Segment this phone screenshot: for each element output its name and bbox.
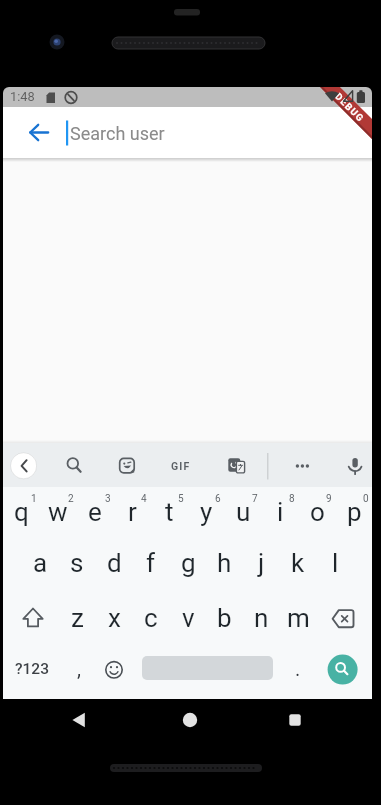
staticText: r (128, 497, 137, 527)
button[interactable]: r (114, 487, 150, 537)
staticText: DEBUG (333, 91, 367, 125)
button[interactable] (321, 646, 365, 694)
button[interactable]: s (59, 538, 95, 588)
button[interactable]: n (243, 593, 279, 643)
button[interactable]: GIF (159, 446, 203, 486)
button[interactable]: Search user (70, 120, 220, 146)
button[interactable]: y (188, 487, 224, 537)
staticText: f (146, 548, 156, 578)
button[interactable]: k (280, 538, 316, 588)
staticText: o (310, 497, 325, 527)
staticText: 8 (289, 493, 295, 505)
button[interactable]: i (262, 487, 298, 537)
button[interactable]: . (283, 644, 313, 692)
button[interactable] (7, 446, 41, 486)
staticText: b (217, 603, 232, 633)
button[interactable]: d (96, 538, 132, 588)
staticText: w (48, 497, 68, 527)
staticText: z (71, 603, 84, 633)
button[interactable]: z (59, 593, 95, 643)
staticText: t (165, 497, 174, 527)
button[interactable]: j (243, 538, 279, 588)
button[interactable]: m (280, 593, 316, 643)
staticText: a (33, 548, 48, 578)
staticText: x (108, 603, 121, 633)
button[interactable]: x (96, 593, 132, 643)
staticText: v (182, 603, 195, 633)
staticText: l (332, 548, 339, 578)
staticText: c (144, 603, 158, 633)
button[interactable]: c (133, 593, 169, 643)
staticText: j (258, 548, 265, 578)
button[interactable] (53, 446, 93, 486)
staticText: e (88, 497, 102, 527)
button[interactable]: l (317, 538, 353, 588)
button[interactable]: q (3, 487, 39, 537)
staticText: ?123 (15, 660, 49, 678)
staticText: d (107, 548, 122, 578)
button[interactable]: h (206, 538, 242, 588)
button[interactable]: w (40, 487, 76, 537)
button[interactable]: p (336, 487, 372, 537)
staticText: 7 (252, 493, 258, 505)
button[interactable]: e (77, 487, 113, 537)
button[interactable]: u (225, 487, 261, 537)
staticText: 2 (68, 493, 74, 505)
staticText: p (347, 497, 362, 527)
button[interactable] (260, 698, 330, 742)
button[interactable] (142, 644, 273, 692)
staticText: i (277, 497, 284, 527)
button[interactable] (155, 698, 225, 742)
staticText: 4 (141, 493, 147, 505)
staticText: h (217, 548, 232, 578)
staticText: Search user (70, 123, 165, 144)
staticText: GIF (171, 460, 191, 472)
staticText: k (291, 548, 305, 578)
button[interactable] (7, 593, 59, 643)
staticText: 5 (178, 493, 184, 505)
button[interactable] (96, 646, 132, 694)
button[interactable] (335, 446, 375, 486)
staticText: 1 (31, 493, 37, 505)
button[interactable] (43, 698, 113, 742)
staticText: 9 (326, 493, 332, 505)
button[interactable]: v (170, 593, 206, 643)
staticText: u (236, 497, 251, 527)
button[interactable]: ?123 (8, 645, 56, 693)
button[interactable]: , (64, 644, 94, 692)
button[interactable]: b (206, 593, 242, 643)
staticText: , (77, 657, 81, 680)
staticText: n (254, 603, 269, 633)
button[interactable] (107, 446, 147, 486)
staticText: g (181, 548, 196, 578)
staticText: m (287, 603, 310, 633)
button[interactable] (15, 109, 63, 157)
staticText: s (70, 548, 84, 578)
button[interactable]: o (299, 487, 335, 537)
staticText: 6 (215, 493, 221, 505)
staticText: 0 (363, 493, 369, 505)
staticText: 3 (105, 493, 111, 505)
button[interactable] (317, 594, 369, 644)
button[interactable] (282, 446, 322, 486)
button[interactable]: t (151, 487, 187, 537)
staticText: . (295, 657, 301, 680)
button[interactable] (216, 446, 256, 486)
staticText: q (14, 497, 29, 527)
button[interactable]: a (22, 538, 58, 588)
staticText: 1:48 (10, 89, 35, 104)
button[interactable]: g (170, 538, 206, 588)
button[interactable]: f (133, 538, 169, 588)
staticText: y (200, 497, 213, 527)
